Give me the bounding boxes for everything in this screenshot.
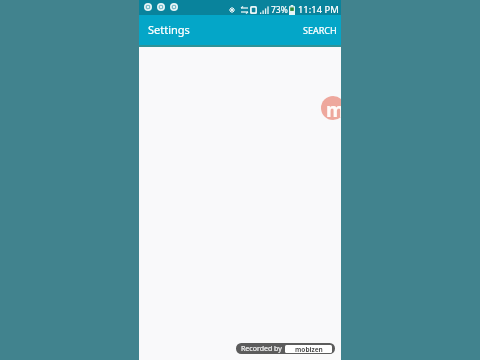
- button[interactable]: Mobizen recorder: [321, 96, 341, 120]
- staticText: m: [326, 97, 341, 120]
- staticText: mobizen: [295, 345, 323, 353]
- button[interactable]: SEARCH: [302, 19, 338, 41]
- staticText: 73%: [271, 4, 288, 16]
- staticText: 11:14 PM: [298, 3, 339, 16]
- staticText: SEARCH: [303, 24, 337, 36]
- staticText: Recorded by: [241, 344, 282, 354]
- staticText: Settings: [148, 22, 190, 37]
